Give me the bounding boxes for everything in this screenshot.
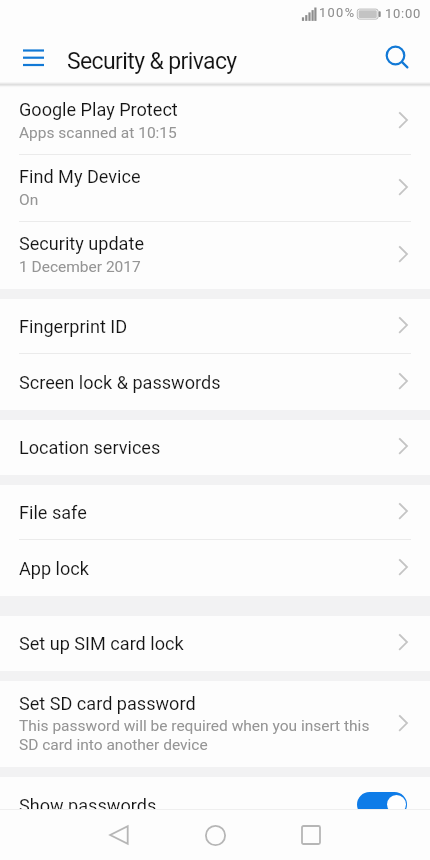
button[interactable]: File safe <box>0 485 430 540</box>
staticText: Google Play Protect <box>19 99 178 120</box>
button[interactable]: Google Play Protect <box>0 88 430 155</box>
staticText: Security & privacy <box>67 48 237 75</box>
staticText: App lock <box>19 558 89 579</box>
staticText: Set up SIM card lock <box>19 633 184 654</box>
staticText: 100% <box>319 5 356 20</box>
staticText: Screen lock & passwords <box>19 372 221 393</box>
button[interactable]: Location services <box>0 420 430 475</box>
staticText: On <box>19 191 39 209</box>
staticText: This password will be required when you … <box>19 717 370 754</box>
button[interactable]: Set SD card password <box>0 681 430 767</box>
button[interactable]: Recent apps <box>287 811 335 859</box>
button[interactable]: Search <box>375 35 415 75</box>
button[interactable]: Security update <box>0 222 430 289</box>
staticText: 10:00 <box>385 6 422 21</box>
staticText: Location services <box>19 437 161 458</box>
button[interactable]: Back <box>95 811 143 859</box>
button[interactable]: Fingerprint ID <box>0 299 430 354</box>
button[interactable]: App lock <box>0 540 430 596</box>
button[interactable]: Find My Device <box>0 155 430 222</box>
staticText: Set SD card password <box>19 693 196 714</box>
staticText: File safe <box>19 502 87 523</box>
button[interactable]: Set up SIM card lock <box>0 616 430 671</box>
button[interactable]: Show passwords toggle <box>357 792 407 817</box>
staticText: Security update <box>19 233 144 254</box>
staticText: Fingerprint ID <box>19 316 128 337</box>
staticText: Show passwords <box>19 795 157 816</box>
staticText: Apps scanned at 10:15 <box>19 124 177 142</box>
button[interactable]: Show passwords <box>0 777 430 833</box>
button[interactable]: Screen lock & passwords <box>0 354 430 410</box>
button[interactable]: Home <box>191 811 239 859</box>
staticText: Find My Device <box>19 166 141 187</box>
staticText: 1 December 2017 <box>19 258 141 276</box>
button[interactable]: Open navigation menu <box>11 33 55 77</box>
